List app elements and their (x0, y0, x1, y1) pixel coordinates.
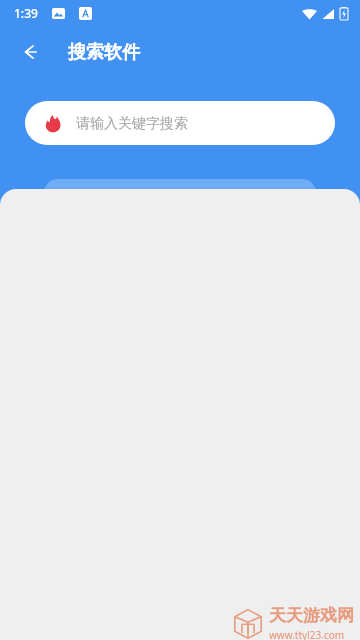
button[interactable]: 请输入关键字搜索 (25, 101, 335, 145)
staticText: 请输入关键字搜索 (76, 115, 188, 133)
button[interactable]: Back (12, 34, 48, 70)
staticText: 1:39 (14, 5, 38, 21)
staticText: 搜索软件 (68, 41, 140, 64)
staticText: 天天游戏网 (269, 605, 354, 626)
staticText: www.ttyl23.com (269, 628, 345, 640)
